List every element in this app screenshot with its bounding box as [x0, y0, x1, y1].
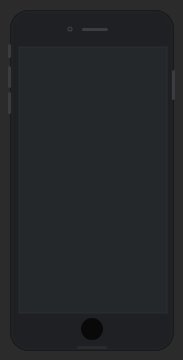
button[interactable]: Volume up: [8, 66, 11, 88]
other: Front camera: [66, 25, 74, 33]
button[interactable]: Phone device mockup: [10, 10, 174, 351]
button[interactable]: Home button: [81, 318, 103, 340]
button[interactable]: Mute switch: [8, 44, 11, 58]
button[interactable]: Volume down: [8, 92, 11, 114]
other: Earpiece speaker: [82, 28, 108, 31]
